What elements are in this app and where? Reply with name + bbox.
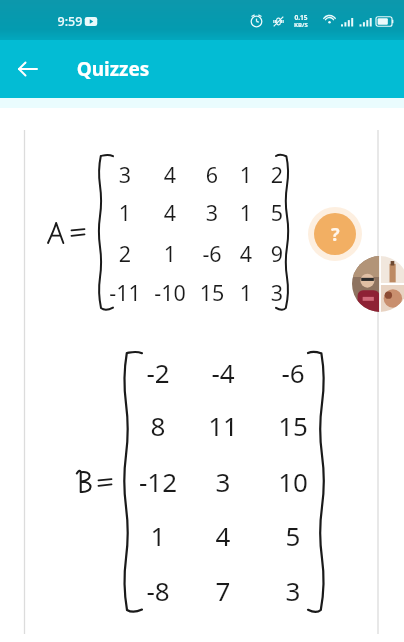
staticText: 1 <box>126 518 190 553</box>
staticText: 3 <box>249 278 305 307</box>
staticText: 1 <box>97 198 153 227</box>
staticText: 8 <box>126 408 190 443</box>
staticText: 3 <box>191 464 255 499</box>
staticText: 4 <box>142 160 198 189</box>
staticText: 2 <box>249 160 305 189</box>
staticText: 11 <box>191 408 255 443</box>
staticText: 4 <box>142 198 198 227</box>
staticText: 4 <box>218 239 274 268</box>
staticText: -10 <box>142 278 198 307</box>
staticText: 9:59 <box>47 13 93 30</box>
staticText: 15 <box>184 278 240 307</box>
staticText: 1 <box>218 278 274 307</box>
staticText: 3 <box>184 198 240 227</box>
staticText: -2 <box>126 355 190 390</box>
button[interactable]: Back <box>8 49 48 89</box>
staticText: -4 <box>191 355 255 390</box>
button[interactable]: Help <box>314 213 356 255</box>
staticText: 15 <box>261 408 325 443</box>
staticText: 9 <box>249 239 305 268</box>
staticText: 7 <box>191 573 255 608</box>
staticText: 4 <box>191 518 255 553</box>
staticText: -11 <box>97 278 153 307</box>
staticText: 1 <box>218 198 274 227</box>
staticText: 0.15 <box>287 13 315 22</box>
staticText: 10 <box>261 464 325 499</box>
staticText: Quizzes <box>53 56 173 82</box>
staticText: -6 <box>184 239 240 268</box>
staticText: 3 <box>261 573 325 608</box>
staticText: 5 <box>249 198 305 227</box>
staticText: 1 <box>142 239 198 268</box>
staticText: 5 <box>261 518 325 553</box>
button[interactable]: Video call <box>352 256 404 312</box>
staticText: 1 <box>218 160 274 189</box>
staticText: 6 <box>184 160 240 189</box>
staticText: KB/S <box>287 21 315 29</box>
staticText: 2 <box>97 239 153 268</box>
staticText: 3 <box>97 160 153 189</box>
staticText: ? <box>331 222 340 247</box>
staticText: -8 <box>126 573 190 608</box>
staticText: -12 <box>126 464 190 499</box>
staticText: -6 <box>261 355 325 390</box>
